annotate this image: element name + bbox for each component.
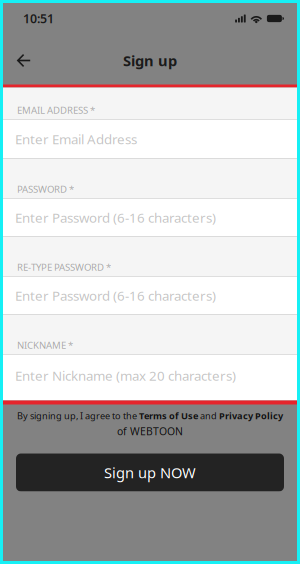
staticText: Enter Password (6-16 characters)	[15, 208, 216, 227]
staticText: Sign up	[123, 50, 177, 70]
staticText: NICKNAME *	[17, 338, 73, 351]
staticText: Terms of Use	[139, 409, 198, 422]
button[interactable]: Enter Nickname (max 20 characters)	[0, 354, 300, 400]
staticText: Sign up NOW	[104, 462, 196, 482]
button[interactable]: Sign up NOW	[16, 453, 284, 491]
button[interactable]: Enter Email Address	[0, 119, 300, 158]
staticText: PASSWORD *	[17, 182, 74, 195]
staticText: of WEBTOON	[117, 424, 183, 438]
button[interactable]: Enter Password (6-16 characters)	[0, 198, 300, 236]
button[interactable]: Enter Password (6-16 characters)	[0, 276, 300, 314]
staticText: RE-TYPE PASSWORD *	[17, 260, 111, 273]
staticText: Enter Email Address	[15, 130, 137, 148]
staticText: Privacy Policy	[219, 409, 283, 422]
staticText: and	[198, 409, 219, 422]
staticText: 10:51	[23, 10, 54, 27]
staticText: Enter Password (6-16 characters)	[15, 286, 216, 305]
staticText: EMAIL ADDRESS *	[17, 103, 95, 116]
staticText: Enter Nickname (max 20 characters)	[15, 366, 236, 385]
button[interactable]: Back	[8, 38, 40, 82]
staticText: By signing up, I agree to the	[17, 409, 139, 422]
